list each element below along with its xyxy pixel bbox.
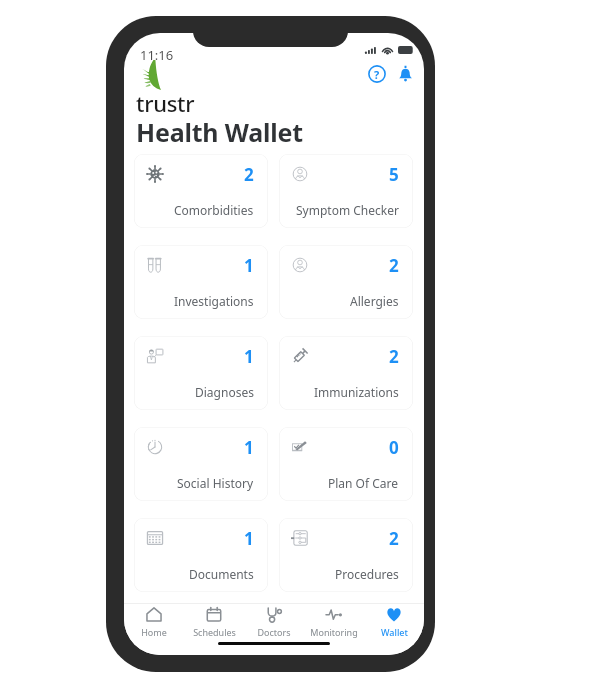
staticText: Social History [177, 475, 254, 491]
button[interactable]: 2 [134, 154, 268, 228]
staticText: 1 [244, 345, 254, 368]
button[interactable]: 1 [134, 336, 268, 410]
staticText: Symptom Checker [296, 202, 399, 218]
button[interactable]: 1 [134, 245, 268, 319]
button[interactable]: Help [364, 61, 390, 87]
staticText: 1 [244, 436, 254, 459]
staticText: Allergies [350, 293, 399, 309]
button[interactable]: Doctors [244, 604, 304, 639]
staticText: ? [374, 67, 380, 82]
staticText: Documents [189, 566, 254, 582]
button[interactable]: Notifications [392, 61, 418, 87]
staticText: 2 [389, 527, 399, 550]
button[interactable]: Wallet [364, 604, 424, 639]
staticText: trustr [136, 88, 195, 118]
staticText: Comorbidities [174, 202, 254, 218]
button[interactable]: 1 [134, 427, 268, 501]
button[interactable]: 2 [279, 518, 413, 592]
button[interactable]: Home [124, 604, 184, 639]
staticText: 2 [389, 345, 399, 368]
staticText: Investigations [174, 293, 254, 309]
button[interactable]: 2 [279, 336, 413, 410]
staticText: Diagnoses [195, 384, 254, 400]
staticText: Wallet [381, 626, 408, 638]
staticText: Immunizations [314, 384, 399, 400]
staticText: Home [141, 626, 167, 638]
staticText: 5 [389, 163, 399, 186]
staticText: 2 [389, 254, 399, 277]
staticText: Procedures [335, 566, 399, 582]
staticText: Schedules [193, 626, 236, 638]
staticText: 0 [389, 436, 399, 459]
button[interactable]: 1 [134, 518, 268, 592]
button[interactable]: 0 [279, 427, 413, 501]
staticText: Monitoring [310, 626, 358, 638]
staticText: Health Wallet [136, 115, 303, 149]
button[interactable]: Monitoring [304, 604, 364, 639]
staticText: Doctors [257, 626, 291, 638]
button[interactable]: 5 [279, 154, 413, 228]
button[interactable]: Schedules [184, 604, 244, 639]
button[interactable]: 2 [279, 245, 413, 319]
staticText: Plan Of Care [328, 475, 399, 491]
staticText: 1 [244, 254, 254, 277]
staticText: 11:16 [140, 46, 174, 64]
staticText: 1 [244, 527, 254, 550]
staticText: 2 [244, 163, 254, 186]
